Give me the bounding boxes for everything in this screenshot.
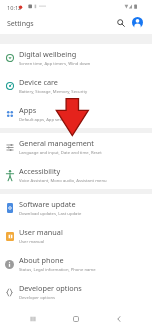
staticText: Device care bbox=[19, 77, 58, 87]
button[interactable]: Accessibility bbox=[0, 161, 152, 189]
staticText: Settings bbox=[7, 19, 34, 29]
staticText: Software update bbox=[19, 199, 76, 209]
staticText: Download updates, Last update bbox=[19, 211, 82, 217]
staticText: Developer options bbox=[19, 283, 82, 293]
staticText: Digital wellbeing bbox=[19, 49, 77, 59]
button[interactable]: Back bbox=[109, 309, 129, 329]
staticText: Developer options bbox=[19, 295, 56, 301]
button[interactable]: Recents bbox=[23, 309, 43, 329]
button[interactable]: Account bbox=[127, 12, 147, 32]
staticText: Apps bbox=[19, 105, 37, 115]
button[interactable]: User manual bbox=[0, 222, 152, 250]
button[interactable]: Digital wellbeing bbox=[0, 44, 152, 72]
staticText: Battery, Storage, Memory, Security bbox=[19, 89, 88, 95]
staticText: About phone bbox=[19, 255, 64, 265]
button[interactable]: Apps bbox=[0, 100, 152, 128]
staticText: Voice Assistant, Mono audio, Assistant m… bbox=[19, 178, 107, 184]
staticText: Language and input, Date and time, Reset bbox=[19, 150, 102, 156]
button[interactable]: Developer options bbox=[0, 278, 152, 306]
staticText: Default apps, App settings bbox=[19, 117, 71, 123]
staticText: 10:12 bbox=[7, 4, 22, 12]
staticText: Accessibility bbox=[19, 166, 61, 176]
staticText: General management bbox=[19, 138, 94, 148]
staticText: User manual bbox=[19, 227, 63, 237]
button[interactable]: Software update bbox=[0, 194, 152, 222]
staticText: Status, Legal information, Phone name bbox=[19, 267, 96, 273]
button[interactable]: About phone bbox=[0, 250, 152, 278]
button[interactable]: Home bbox=[66, 309, 86, 329]
button[interactable]: Device care bbox=[0, 72, 152, 100]
staticText: Screen time, App timers, Wind down bbox=[19, 61, 91, 67]
button[interactable]: Search bbox=[111, 13, 131, 33]
staticText: User manual bbox=[19, 239, 45, 245]
button[interactable]: General management bbox=[0, 133, 152, 161]
